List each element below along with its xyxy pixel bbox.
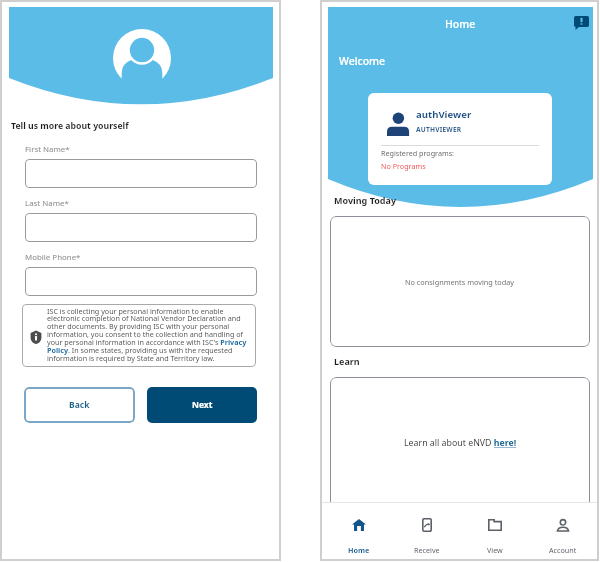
staticText: Mobile Phone* bbox=[25, 252, 81, 263]
staticText: Home bbox=[445, 17, 476, 31]
button[interactable]: Notifications bbox=[572, 13, 591, 32]
staticText: Learn bbox=[334, 355, 360, 367]
button[interactable]: authViewer bbox=[368, 93, 552, 185]
button[interactable]: Receive bbox=[393, 502, 461, 560]
staticText: Last Name* bbox=[25, 198, 69, 209]
staticText: AUTHVIEWER bbox=[416, 125, 462, 134]
staticText: Tell us more about yourself bbox=[11, 120, 129, 132]
staticText: Account bbox=[549, 545, 577, 555]
staticText: Receive bbox=[414, 545, 440, 555]
button[interactable]: ISC is collecting your personal informat… bbox=[22, 304, 256, 367]
staticText: Registered programs: bbox=[381, 148, 455, 158]
button[interactable]: View bbox=[461, 502, 529, 560]
button[interactable]: Back bbox=[24, 387, 135, 423]
staticText: First Name* bbox=[25, 144, 70, 155]
button[interactable] bbox=[25, 159, 257, 188]
staticText: Welcome bbox=[339, 54, 386, 68]
staticText: Learn all about eNVD here! bbox=[404, 437, 517, 449]
button[interactable]: Next bbox=[147, 387, 257, 423]
button[interactable] bbox=[25, 267, 257, 296]
staticText: No Programs bbox=[381, 161, 426, 171]
staticText: Home bbox=[348, 545, 370, 555]
button[interactable]: Home bbox=[325, 502, 393, 560]
staticText: View bbox=[487, 545, 503, 555]
staticText: Next bbox=[192, 399, 213, 411]
button[interactable]: Account bbox=[529, 502, 597, 560]
staticText: Moving Today bbox=[334, 194, 397, 206]
staticText: authViewer bbox=[416, 108, 472, 121]
button[interactable] bbox=[25, 213, 257, 242]
staticText: ISC is collecting your personal informat… bbox=[47, 306, 248, 364]
staticText: Back bbox=[69, 399, 90, 411]
staticText: No consignments moving today bbox=[405, 277, 515, 287]
